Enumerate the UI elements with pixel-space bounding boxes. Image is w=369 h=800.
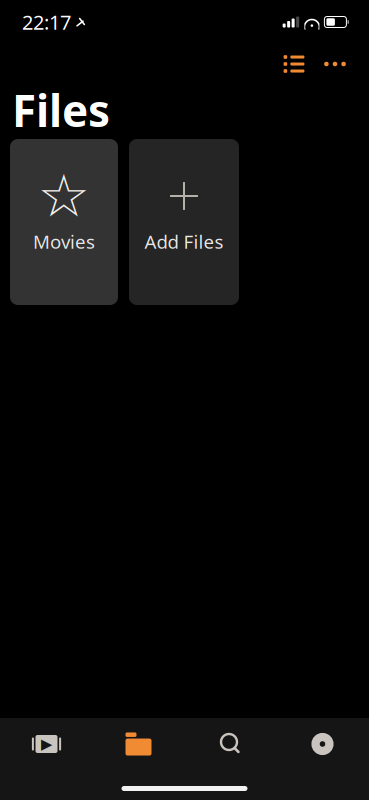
button[interactable]: Add Files (129, 139, 239, 305)
button[interactable]: Videos (0, 719, 92, 769)
staticText: Add Files (144, 229, 223, 254)
staticText: Movies (33, 229, 95, 254)
button[interactable]: ☆ (10, 139, 118, 305)
button[interactable]: Settings (276, 719, 368, 769)
staticText: ▶ (41, 736, 52, 752)
button[interactable]: More options (314, 46, 356, 82)
staticText: Files (12, 81, 110, 139)
button[interactable]: List view (274, 46, 314, 82)
button[interactable]: Search (184, 719, 276, 769)
staticText: 22:17 (22, 9, 71, 35)
staticText: ☆ (37, 163, 90, 229)
button[interactable]: Files (92, 719, 184, 769)
